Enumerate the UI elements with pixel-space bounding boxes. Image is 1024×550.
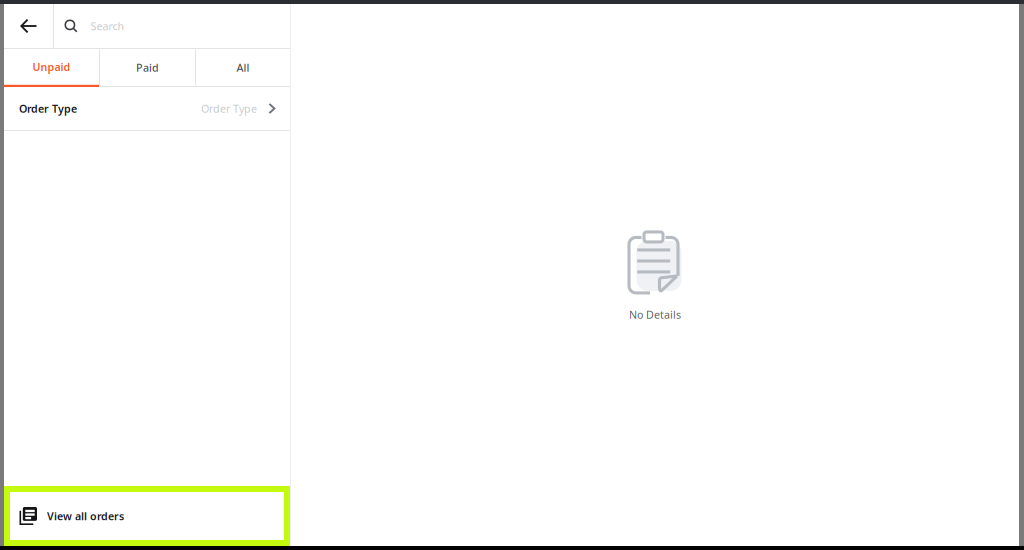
button[interactable]: Order Type (4, 87, 290, 130)
staticText: No Details (629, 307, 681, 322)
staticText: View all orders (47, 509, 124, 523)
staticText: Unpaid (32, 60, 70, 74)
staticText: All (236, 60, 249, 75)
staticText: Order Type (19, 101, 77, 116)
staticText: Paid (136, 60, 159, 75)
button[interactable]: All (196, 49, 290, 87)
button[interactable]: Paid (100, 49, 195, 87)
staticText: Search (90, 19, 124, 33)
button[interactable]: Search (54, 4, 290, 48)
staticText: Order Type (201, 101, 257, 116)
button[interactable]: Back (4, 4, 53, 48)
button[interactable]: View all orders (4, 486, 290, 546)
button[interactable]: Unpaid (4, 49, 99, 87)
